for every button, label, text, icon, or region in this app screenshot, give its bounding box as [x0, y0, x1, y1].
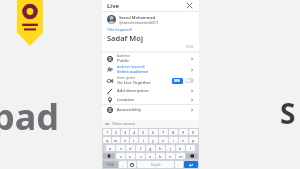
button[interactable]: l: [186, 145, 195, 151]
staticText: o: [182, 138, 185, 143]
staticText: k: [179, 146, 182, 151]
button[interactable]: 8: [169, 129, 178, 135]
button[interactable]: .: [175, 161, 183, 168]
button[interactable]: e: [121, 137, 129, 143]
staticText: v: [149, 154, 152, 159]
button[interactable]: n: [166, 153, 175, 159]
staticText: f: [140, 146, 142, 151]
staticText: u: [162, 138, 165, 143]
staticText: S: [280, 94, 296, 132]
staticText: Location: [117, 97, 135, 103]
staticText: c: [140, 154, 142, 159]
button[interactable]: Audience: [107, 53, 194, 64]
button[interactable]: Backspace: [186, 153, 198, 159]
staticText: i: [173, 138, 175, 143]
staticText: 7: [162, 130, 165, 135]
staticText: s: [120, 146, 122, 151]
staticText: 8: [172, 130, 175, 135]
button[interactable]: 9: [179, 129, 188, 135]
staticText: g: [149, 146, 152, 151]
button[interactable]: Close: [185, 1, 194, 10]
button[interactable]: Enter: [184, 161, 198, 168]
button[interactable]: t: [139, 137, 148, 143]
button[interactable]: y: [149, 137, 158, 143]
staticText: 1: [106, 130, 109, 135]
button[interactable]: p: [189, 137, 198, 143]
button[interactable]: Location: [107, 95, 194, 104]
button[interactable]: 5: [139, 129, 148, 135]
button[interactable]: r: [130, 137, 138, 143]
button[interactable]: d: [126, 145, 135, 151]
staticText: 5: [142, 130, 145, 135]
button[interactable]: Title (required): [107, 27, 194, 51]
staticText: a: [109, 146, 112, 151]
button[interactable]: i: [169, 137, 178, 143]
button[interactable]: q: [103, 137, 111, 143]
button[interactable]: w: [112, 137, 120, 143]
button[interactable]: 1: [103, 129, 111, 135]
button[interactable]: o: [179, 137, 188, 143]
button[interactable]: Shift: [103, 153, 115, 159]
button[interactable]: g: [146, 145, 155, 151]
staticText: English: [151, 163, 161, 167]
button[interactable]: b: [156, 153, 165, 159]
button[interactable]: v: [146, 153, 155, 159]
button[interactable]: c: [136, 153, 145, 159]
staticText: 2: [115, 130, 118, 135]
staticText: Add description: [117, 88, 149, 94]
staticText: m: [179, 154, 183, 159]
staticText: h: [159, 146, 162, 151]
button[interactable]: 6: [149, 129, 158, 135]
button[interactable]: z: [116, 153, 125, 159]
button[interactable]: Accessibility: [107, 105, 194, 114]
staticText: w: [114, 138, 118, 143]
staticText: pad: [0, 92, 60, 141]
staticText: Public: [117, 58, 130, 64]
staticText: l: [190, 146, 192, 151]
staticText: p: [192, 138, 195, 143]
staticText: t: [143, 138, 145, 143]
button[interactable]: 7: [159, 129, 168, 135]
staticText: y: [152, 138, 155, 143]
staticText: z: [120, 154, 122, 159]
button[interactable]: u: [159, 137, 168, 143]
staticText: e: [124, 138, 127, 143]
button[interactable]: ?123: [103, 161, 118, 168]
button[interactable]: a: [106, 145, 115, 151]
staticText: 0/255: [186, 45, 194, 49]
button[interactable]: 4: [130, 129, 138, 135]
staticText: 3: [124, 130, 127, 135]
staticText: j: [170, 146, 172, 151]
staticText: n: [169, 154, 172, 159]
button[interactable]: j: [166, 145, 175, 151]
staticText: q: [106, 138, 109, 143]
staticText: Invite guests: [117, 76, 136, 80]
button[interactable]: Add description: [107, 86, 194, 95]
staticText: ,: [122, 162, 124, 167]
button[interactable]: Audience (required): [107, 64, 194, 75]
staticText: 6: [152, 130, 155, 135]
staticText: Accessibility: [117, 107, 142, 113]
button[interactable]: k: [176, 145, 185, 151]
button[interactable]: 0: [189, 129, 198, 135]
staticText: r: [133, 138, 135, 143]
button[interactable]: Toggle Go Live Together: [185, 78, 194, 83]
button[interactable]: h: [156, 145, 165, 151]
button[interactable]: m: [176, 153, 185, 159]
button[interactable]: f: [136, 145, 145, 151]
button[interactable]: English: [137, 161, 174, 168]
button[interactable]: Saeed Mohammed: [107, 12, 194, 27]
button[interactable]: 2: [112, 129, 120, 135]
staticText: Theme removed: [112, 122, 135, 126]
button[interactable]: x: [126, 153, 135, 159]
staticText: Live: [107, 2, 120, 10]
staticText: Sadaf Moj: [107, 33, 144, 43]
button[interactable]: ,: [119, 161, 127, 168]
staticText: @saeedmohammed0011: [119, 20, 159, 25]
button[interactable]: Invite guests: [107, 75, 194, 86]
staticText: NEW: [174, 79, 181, 83]
button[interactable]: 3: [121, 129, 129, 135]
button[interactable]: Emoji: [128, 161, 136, 168]
button[interactable]: s: [116, 145, 125, 151]
staticText: 4: [133, 130, 136, 135]
